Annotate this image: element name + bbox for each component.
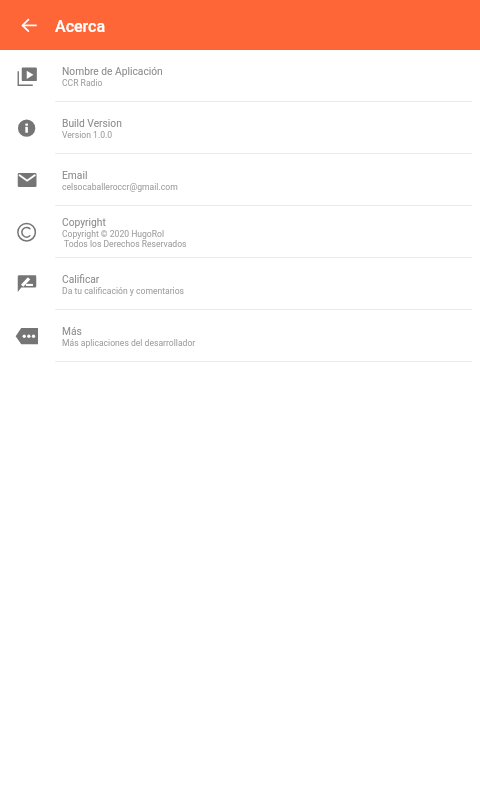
staticText: Todos los Derechos Reservados	[62, 239, 187, 249]
staticText: Más	[62, 325, 82, 337]
staticText: CCR Radio	[62, 78, 103, 88]
staticText: Acerca	[55, 17, 106, 36]
staticText: Copyright	[62, 216, 106, 228]
staticText: Copyright © 2020 HugoRol	[62, 229, 165, 239]
staticText: Más aplicaciones del desarrollador	[62, 338, 196, 348]
staticText: celsocaballeroccr@gmail.com	[62, 182, 178, 192]
staticText: Calificar	[62, 273, 100, 285]
button[interactable]: Back	[13, 9, 45, 41]
button[interactable]: Build Version	[0, 102, 480, 154]
staticText: Email	[62, 169, 88, 181]
button[interactable]: Email	[0, 154, 480, 206]
button[interactable]: Nombre de Aplicación	[0, 50, 480, 102]
staticText: Build Version	[62, 117, 122, 129]
staticText: Nombre de Aplicación	[62, 65, 163, 77]
staticText: Da tu calificación y comentarios	[62, 286, 185, 296]
button[interactable]: Calificar	[0, 258, 480, 310]
button[interactable]: Copyright	[0, 206, 480, 258]
staticText: Version 1.0.0	[62, 130, 113, 140]
button[interactable]: Más	[0, 310, 480, 362]
